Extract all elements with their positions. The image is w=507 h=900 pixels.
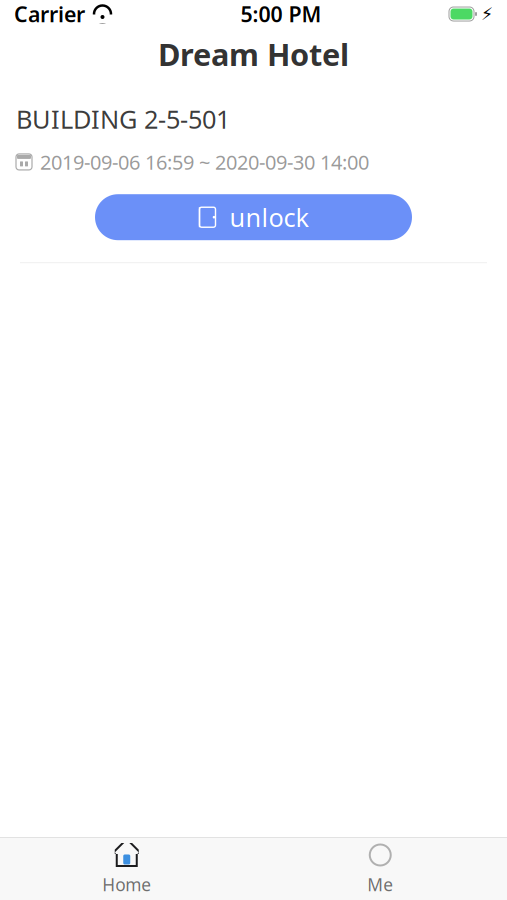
staticText: Carrier xyxy=(14,0,85,28)
button[interactable]: Me xyxy=(335,841,425,897)
staticText: ⚡︎ xyxy=(481,4,493,24)
staticText: Dream Hotel xyxy=(158,34,349,74)
staticText: 2019-09-06 16:59 ~ 2020-09-30 14:00 xyxy=(40,149,369,175)
staticText: Home xyxy=(102,873,151,896)
staticText: 5:00 PM xyxy=(240,0,321,28)
button[interactable]: unlock xyxy=(95,194,412,240)
staticText: BUILDING 2-5-501 xyxy=(16,102,230,136)
button[interactable]: Home xyxy=(82,841,172,897)
staticText: Me xyxy=(367,873,393,896)
staticText: unlock xyxy=(229,200,309,234)
